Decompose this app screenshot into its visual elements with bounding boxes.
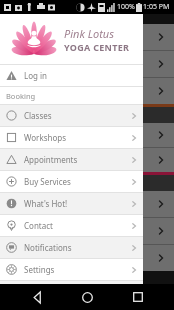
- button[interactable]: Settings: [0, 259, 143, 280]
- staticText: Workshops: [24, 132, 67, 143]
- staticText: 100%: [117, 2, 135, 12]
- staticText: Contact: [24, 220, 53, 231]
- staticText: What's Hot!: [24, 198, 68, 209]
- staticText: Settings: [24, 264, 55, 275]
- button[interactable]: What's Hot!: [0, 193, 143, 214]
- staticText: Classes: [24, 110, 52, 121]
- button[interactable]: Contact: [0, 215, 143, 236]
- button[interactable]: Appointments: [0, 149, 143, 170]
- button[interactable]: Back: [23, 284, 51, 310]
- staticText: Booking: [6, 91, 36, 101]
- staticText: Appointments: [24, 154, 78, 165]
- button[interactable]: Classes: [0, 105, 143, 126]
- staticText: Log in: [24, 70, 48, 81]
- button[interactable]: Recents: [124, 284, 152, 310]
- button[interactable]: Home: [73, 284, 101, 310]
- button[interactable]: Buy Services: [0, 171, 143, 192]
- staticText: Notifications: [24, 242, 72, 253]
- button[interactable]: Workshops: [0, 127, 143, 148]
- staticText: Pink Lotus: [64, 26, 114, 41]
- staticText: 1:05 PM: [143, 2, 170, 12]
- staticText: Buy Services: [24, 176, 71, 187]
- staticText: YOGA CENTER: [64, 41, 130, 53]
- button[interactable]: Log in: [0, 65, 143, 86]
- button[interactable]: Notifications: [0, 237, 143, 258]
